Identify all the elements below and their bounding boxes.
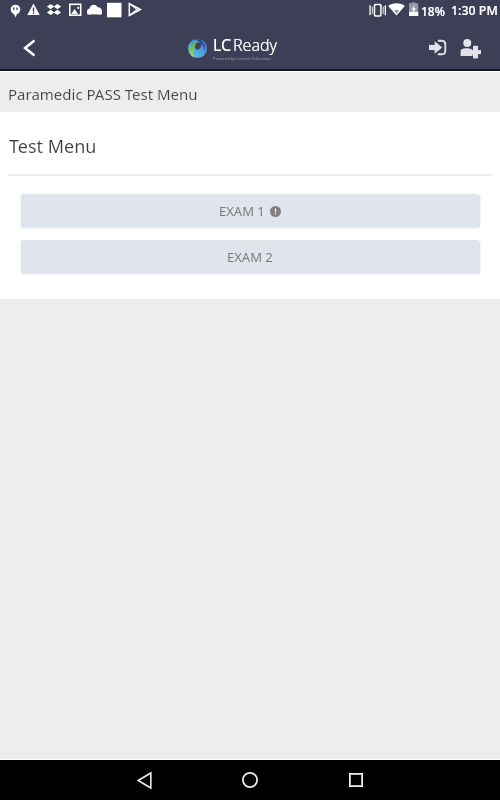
staticText: Paramedic PASS Test Menu [8,84,198,104]
staticText: Powered by Limmer Education [213,56,271,62]
staticText: EXAM 1 [219,202,265,220]
staticText: 1:30 PM [451,2,498,19]
staticText: Ready [233,34,278,56]
button[interactable]: EXAM 1 [21,194,479,227]
button[interactable]: Back [118,760,170,800]
button[interactable]: Login [414,26,460,69]
button[interactable]: Register [447,26,493,69]
staticText: 18% [421,3,445,19]
button[interactable]: Recents [330,760,382,800]
staticText: LC [213,34,232,56]
staticText: Test Menu [9,134,97,159]
button[interactable]: Back [12,26,47,69]
button[interactable]: EXAM 2 [21,240,479,273]
staticText: EXAM 2 [227,248,273,266]
button[interactable]: Home [224,760,276,800]
